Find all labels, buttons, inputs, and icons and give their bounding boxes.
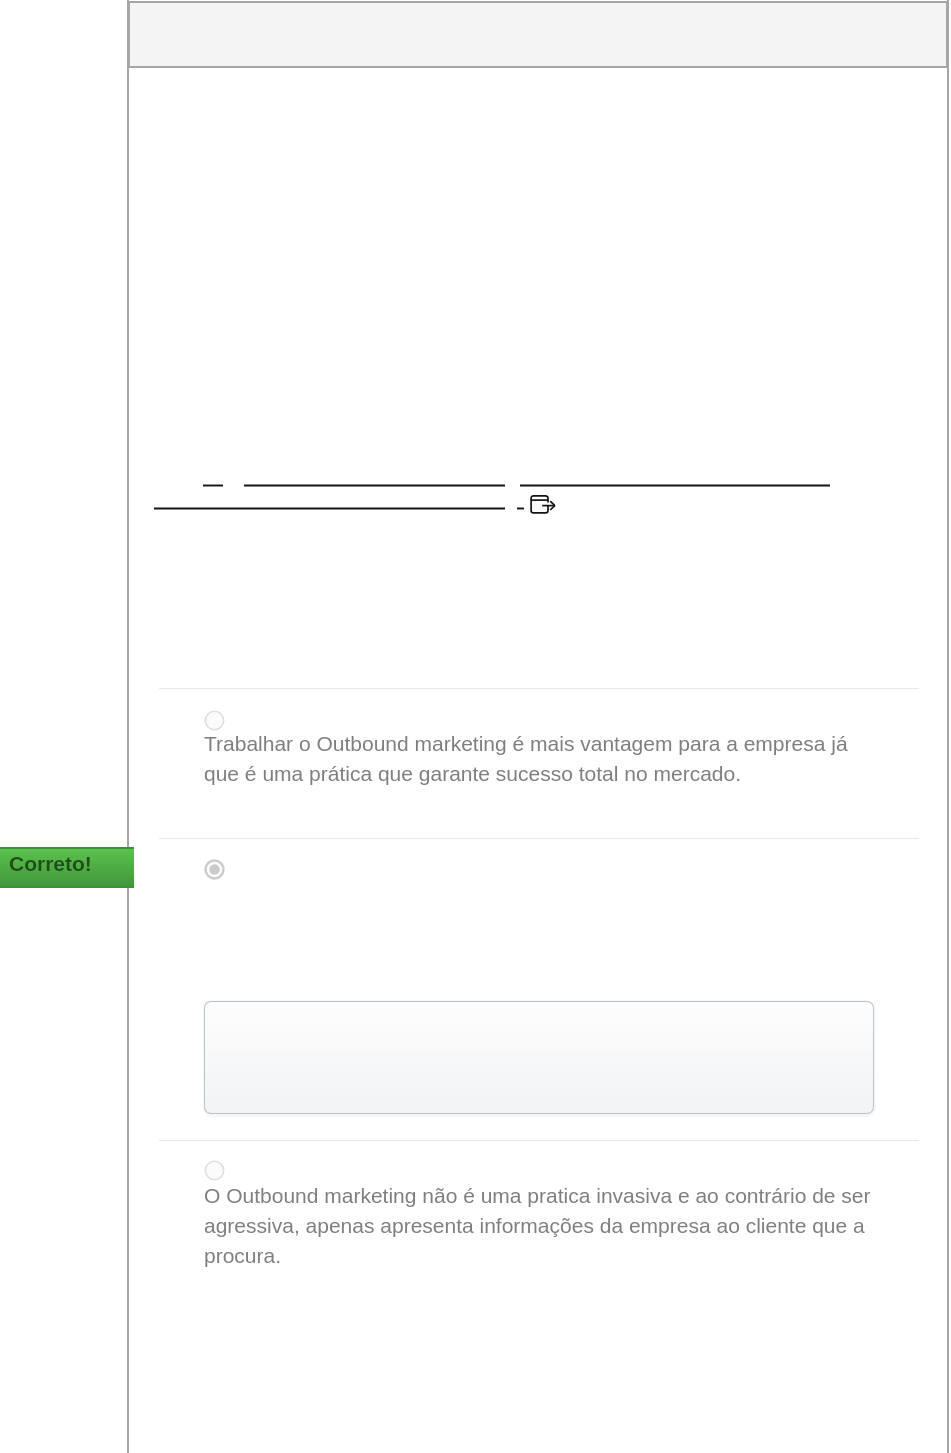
staticText: O Outbound marketing não é uma pratica i…	[204, 1179, 884, 1269]
button[interactable]: Correto!	[0, 847, 134, 888]
button[interactable]: Open in new window	[527, 491, 559, 517]
staticText: Correto!	[9, 852, 92, 875]
button[interactable]: O Outbound marketing não é uma pratica i…	[159, 1140, 919, 1320]
button[interactable]: Trabalhar o Outbound marketing é mais va…	[159, 688, 919, 838]
button[interactable]	[159, 838, 919, 1140]
staticText: Trabalhar o Outbound marketing é mais va…	[204, 727, 856, 787]
